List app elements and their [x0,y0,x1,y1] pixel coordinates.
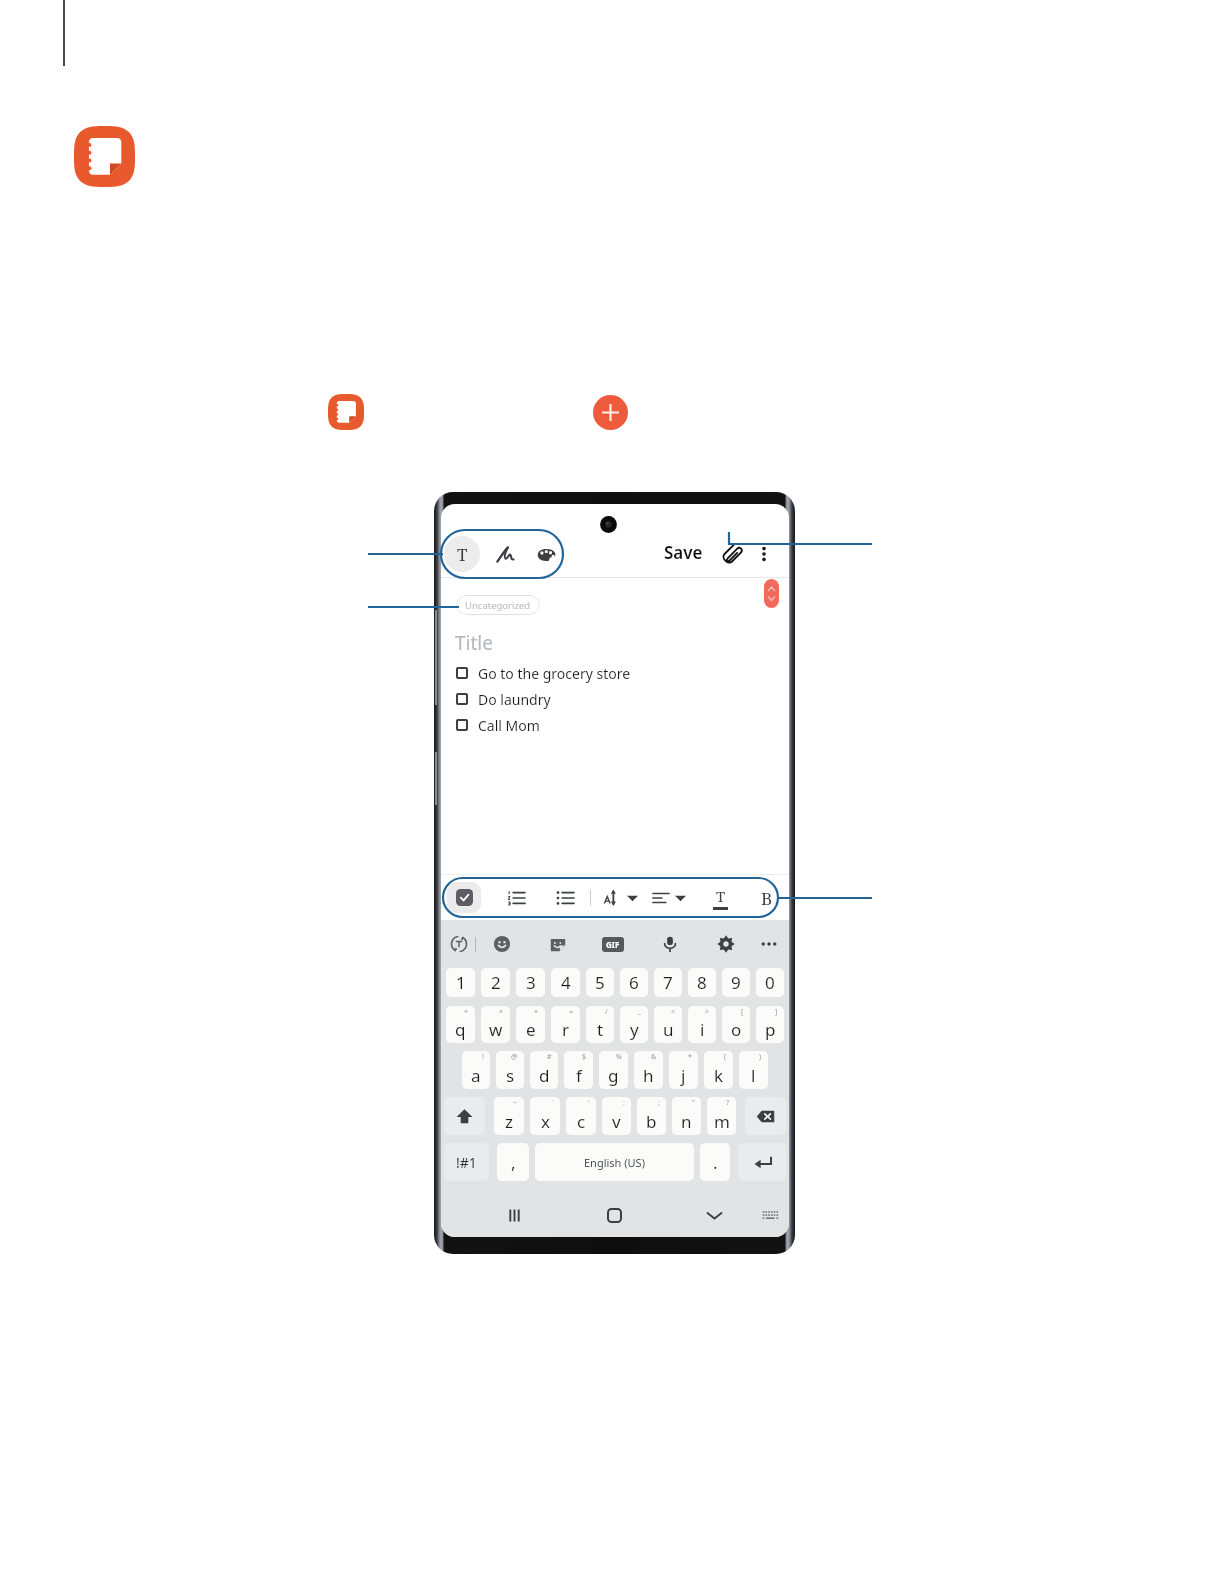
staticText: b [646,1110,657,1133]
staticText: & [651,1052,657,1062]
staticText: r [562,1018,570,1041]
button[interactable]: ! [462,1051,490,1089]
button[interactable]: 6 [620,968,648,997]
staticText: 6 [629,971,639,994]
button[interactable]: Alignment [653,883,686,913]
button[interactable]: " [672,1097,701,1135]
button[interactable]: ( [704,1051,733,1089]
button[interactable]: Bold [752,883,782,913]
staticText: 5 [595,971,605,994]
staticText: Uncategorized [465,599,531,612]
staticText: GIF [606,939,620,950]
button[interactable]: 9 [722,968,750,997]
staticText: 8 [697,971,707,994]
button[interactable]: , [497,1143,529,1181]
button[interactable]: > [688,1006,716,1043]
button[interactable]: Text size [604,883,638,913]
button[interactable]: * [669,1051,698,1089]
button[interactable]: 2 [481,968,510,997]
button[interactable]: 3 [516,968,545,997]
button[interactable]: More options [747,537,781,571]
button[interactable]: Samsung Notes [74,126,135,187]
button[interactable]: Attach [715,537,749,571]
button[interactable]: / [586,1006,614,1043]
button[interactable]: 7 [654,968,682,997]
button[interactable]: : [602,1097,631,1135]
button[interactable]: Drawing [528,536,564,572]
staticText: . [713,1151,718,1174]
staticText: y [630,1018,639,1041]
button[interactable]: Backspace [745,1097,786,1135]
staticText: k [714,1064,724,1087]
button[interactable]: Numbered list [501,883,531,913]
button[interactable]: 0 [756,968,784,997]
button[interactable]: Bulleted list [550,883,580,913]
staticText: ! [482,1052,484,1062]
button[interactable]: & [634,1051,663,1089]
button[interactable]: Voice input [658,932,682,956]
button[interactable]: Home [600,1201,628,1229]
button[interactable]: % [599,1051,628,1089]
button[interactable]: Do laundry [441,686,789,712]
button[interactable]: _ [620,1006,648,1043]
button[interactable]: Add note [593,395,628,430]
button[interactable]: ` [530,1097,560,1135]
button[interactable]: Settings [714,932,738,956]
staticText: 2 [491,971,501,994]
staticText: t [597,1018,604,1041]
button[interactable]: English (US) [535,1143,694,1181]
button[interactable]: Checklist [447,882,481,913]
button[interactable]: 5 [586,968,614,997]
button[interactable]: 8 [688,968,716,997]
button[interactable]: Hide keyboard [700,1201,728,1229]
button[interactable]: !#1 [444,1143,489,1181]
button[interactable]: Recents [500,1201,528,1229]
button[interactable]: [ [722,1006,750,1043]
staticText: l [751,1064,756,1087]
button[interactable]: ? [707,1097,736,1135]
button[interactable]: # [530,1051,558,1089]
staticText: > [705,1007,710,1017]
button[interactable]: Translate [447,932,471,956]
button[interactable]: Keyboard [756,1201,784,1229]
staticText: n [681,1110,692,1133]
button[interactable]: Handwriting [488,536,524,572]
staticText: = [569,1007,574,1017]
button[interactable]: Emoji [490,932,514,956]
button[interactable]: ' [566,1097,596,1135]
staticText: * [688,1052,692,1062]
button[interactable]: @ [496,1051,524,1089]
staticText: w [489,1018,503,1041]
button[interactable]: ] [756,1006,784,1043]
button[interactable]: Stickers [546,932,570,956]
button[interactable]: GIF [602,937,624,952]
staticText: [ [741,1007,744,1017]
staticText: ; [658,1098,660,1108]
button[interactable]: More [757,932,781,956]
button[interactable]: Go to the grocery store [441,660,789,686]
button[interactable]: Save [660,535,707,569]
button[interactable]: 4 [551,968,580,997]
button[interactable]: = [551,1006,580,1043]
staticText: % [616,1052,622,1062]
button[interactable]: . [700,1143,730,1181]
button[interactable]: Enter [738,1143,786,1181]
staticText: ' [588,1098,590,1108]
button[interactable]: 1 [446,968,475,997]
button[interactable]: × [481,1006,510,1043]
button[interactable]: ) [739,1051,768,1089]
button[interactable]: $ [564,1051,593,1089]
button[interactable]: + [446,1006,475,1043]
button[interactable]: + [516,1006,545,1043]
staticText: 7 [663,971,673,994]
button[interactable]: Shift [444,1097,485,1135]
button[interactable]: Text color [705,883,735,913]
staticText: @ [511,1052,518,1062]
button[interactable]: < [654,1006,682,1043]
button[interactable]: Samsung Notes [328,394,364,430]
button[interactable]: Text mode [444,536,480,572]
button[interactable]: ; [637,1097,666,1135]
button[interactable]: Call Mom [441,712,789,738]
button[interactable]: ~ [494,1097,524,1135]
button[interactable]: Uncategorized [456,595,540,615]
